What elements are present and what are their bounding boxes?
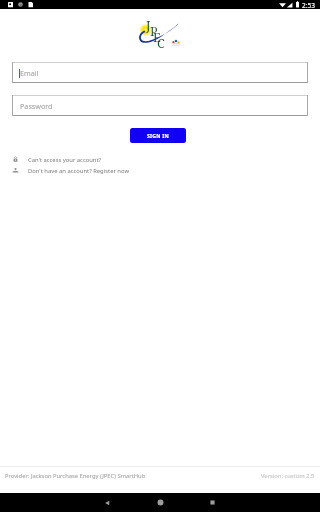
button[interactable]: Recents bbox=[194, 493, 230, 512]
staticText: C bbox=[157, 35, 165, 52]
staticText: P bbox=[150, 23, 158, 40]
button[interactable]: Password bbox=[12, 95, 308, 116]
button[interactable]: Home bbox=[142, 493, 178, 512]
staticText: Provider: Jackson Purchase Energy (JPEC)… bbox=[5, 472, 146, 480]
staticText: J bbox=[146, 17, 151, 34]
staticText: SIGN IN bbox=[147, 132, 169, 139]
button[interactable]: Back bbox=[89, 493, 125, 512]
staticText: Email bbox=[20, 68, 39, 78]
button[interactable]: Can't access your account? bbox=[0, 154, 320, 165]
button[interactable]: SIGN IN bbox=[130, 128, 186, 143]
staticText: Can't access your account? bbox=[28, 156, 102, 164]
staticText: Don't have an account? Register now bbox=[28, 167, 129, 175]
button[interactable]: Email bbox=[12, 62, 308, 83]
button[interactable]: Don't have an account? Register now bbox=[0, 165, 320, 176]
staticText: Password bbox=[20, 101, 53, 111]
staticText: 2:53 bbox=[302, 1, 315, 10]
staticText: Version: custom 2.5 bbox=[261, 472, 315, 480]
staticText: E bbox=[153, 29, 161, 46]
